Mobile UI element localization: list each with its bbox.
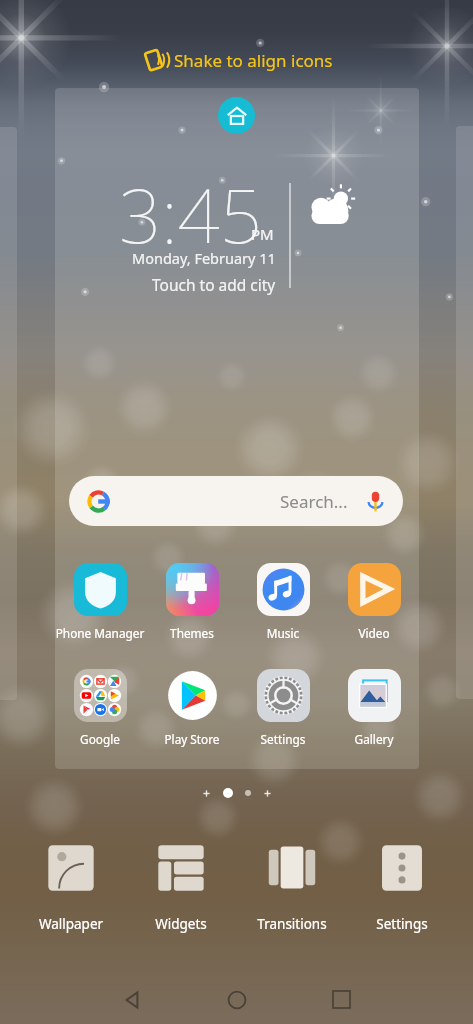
button[interactable]: Phone Manager xyxy=(50,563,150,639)
button[interactable] xyxy=(300,180,362,242)
button[interactable]: Themes xyxy=(142,563,242,639)
button[interactable]: Search... xyxy=(69,476,403,526)
staticText: Phone Manager xyxy=(50,625,150,641)
staticText: Google xyxy=(50,731,150,747)
staticText: Shake to align icons xyxy=(174,49,333,72)
button[interactable]: Play Store xyxy=(142,669,242,745)
button[interactable]: Music xyxy=(233,563,333,639)
button[interactable]: Widgets xyxy=(126,841,236,933)
button[interactable]: Shake to align icons xyxy=(141,44,333,76)
button[interactable]: Gallery xyxy=(324,669,424,745)
button[interactable]: Video xyxy=(324,563,424,639)
staticText: Themes xyxy=(142,625,242,641)
staticText: Wallpaper xyxy=(16,915,126,933)
button[interactable]: Recent apps xyxy=(289,975,393,1024)
staticText: Transitions xyxy=(237,915,347,933)
staticText: Settings xyxy=(347,915,457,933)
staticText: Settings xyxy=(233,731,333,747)
staticText: Music xyxy=(233,625,333,641)
staticText: 3:45 xyxy=(119,164,262,265)
staticText: Play Store xyxy=(142,731,242,747)
button[interactable]: Settings xyxy=(347,841,457,933)
staticText: Widgets xyxy=(126,915,236,933)
button[interactable]: Google xyxy=(50,669,150,745)
button[interactable]: Transitions xyxy=(237,841,347,933)
button[interactable]: Back xyxy=(81,975,185,1024)
staticText: PM xyxy=(251,224,274,244)
button[interactable]: Wallpaper xyxy=(16,841,126,933)
staticText: Touch to add city xyxy=(152,274,276,295)
button[interactable]: 3:45 xyxy=(112,160,292,295)
staticText: Search... xyxy=(280,490,348,513)
button[interactable]: Set as default home screen xyxy=(218,97,255,134)
staticText: Gallery xyxy=(324,731,424,747)
button[interactable]: Settings xyxy=(233,669,333,745)
staticText: Monday, February 11 xyxy=(132,248,276,268)
button[interactable]: Home xyxy=(185,975,289,1024)
staticText: Video xyxy=(324,625,424,641)
